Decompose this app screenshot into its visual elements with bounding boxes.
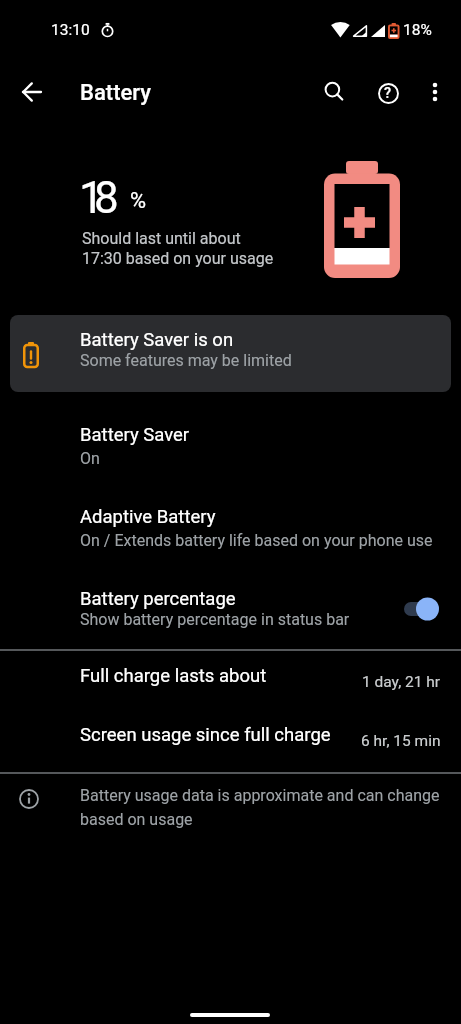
button[interactable]: Full charge lasts about: [0, 653, 461, 707]
button[interactable]: [12, 72, 52, 112]
staticText: Adaptive Battery: [80, 506, 216, 528]
button[interactable]: Battery percentage: [0, 570, 461, 652]
staticText: Battery usage data is approximate and ca…: [80, 786, 440, 829]
button[interactable]: ?: [368, 73, 408, 113]
button[interactable]: [415, 72, 455, 112]
staticText: On: [80, 449, 100, 468]
staticText: 6 hr, 15 min: [361, 732, 441, 750]
button[interactable]: Adaptive Battery: [0, 488, 461, 570]
button[interactable]: [314, 72, 354, 112]
staticText: On / Extends battery life based on your …: [80, 531, 433, 550]
button[interactable]: Battery Saver: [0, 406, 461, 488]
staticText: Should last until about 17:30 based on y…: [82, 229, 274, 268]
button[interactable]: Battery Saver is on: [10, 315, 451, 392]
staticText: Full charge lasts about: [80, 665, 267, 687]
staticText: %: [130, 188, 147, 214]
staticText: Battery Saver is on: [80, 329, 234, 351]
staticText: Battery Saver: [80, 424, 190, 446]
staticText: Some features may be limited: [80, 351, 292, 370]
button[interactable]: [400, 594, 445, 624]
staticText: Battery: [80, 80, 151, 106]
staticText: Show battery percentage in status bar: [80, 610, 350, 629]
staticText: 1 day, 21 hr: [362, 673, 441, 691]
staticText: ?: [384, 85, 392, 102]
staticText: Battery percentage: [80, 588, 236, 610]
staticText: 18%: [403, 21, 432, 39]
staticText: Screen usage since full charge: [80, 724, 331, 746]
button[interactable]: Screen usage since full charge: [0, 712, 461, 766]
staticText: 1: [79, 172, 104, 224]
staticText: 8: [94, 172, 119, 224]
staticText: 13:10: [51, 21, 90, 39]
